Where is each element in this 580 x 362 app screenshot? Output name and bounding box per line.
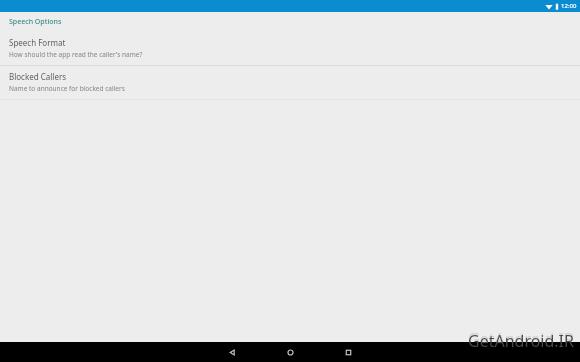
staticText: 12:00 [561, 2, 577, 10]
staticText: Speech Options [9, 17, 62, 27]
button[interactable]: Speech Format [0, 32, 580, 65]
button[interactable]: Back [215, 342, 249, 362]
button[interactable]: Recent apps [331, 342, 365, 362]
staticText: GetAndroid.IR [468, 328, 575, 350]
staticText: How should the app read the caller's nam… [9, 50, 143, 59]
button[interactable]: Blocked Callers [0, 66, 580, 99]
staticText: Speech Format [9, 37, 66, 48]
button[interactable]: Home [273, 342, 307, 362]
staticText: Name to announce for blocked callers [9, 84, 125, 93]
staticText: Blocked Callers [9, 71, 67, 82]
staticText: GetAndroid.IR [468, 330, 575, 350]
